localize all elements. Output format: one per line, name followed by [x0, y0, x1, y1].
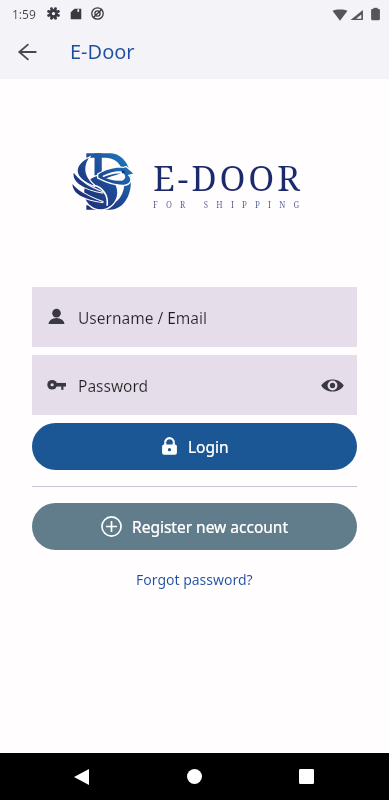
button[interactable]: Username / Email — [32, 287, 357, 347]
staticText: Password — [78, 375, 149, 396]
button[interactable]: Recents — [283, 753, 330, 800]
button[interactable]: Password — [32, 355, 357, 415]
button[interactable]: Forgot password? — [132, 566, 257, 593]
staticText: Username / Email — [78, 307, 208, 328]
button[interactable]: Back — [5, 31, 49, 75]
staticText: E-Door — [70, 38, 135, 65]
button[interactable]: Register new account — [32, 503, 357, 550]
staticText: Register new account — [132, 516, 289, 537]
staticText: FOR SHIPPING — [153, 199, 308, 210]
button[interactable]: Show password — [318, 371, 346, 399]
staticText: E-DOOR — [153, 154, 303, 202]
button[interactable]: Back — [58, 753, 105, 800]
button[interactable]: Login — [32, 423, 357, 470]
staticText: 1:59 — [12, 6, 36, 22]
button[interactable]: Home — [171, 753, 218, 800]
staticText: Login — [188, 436, 229, 457]
